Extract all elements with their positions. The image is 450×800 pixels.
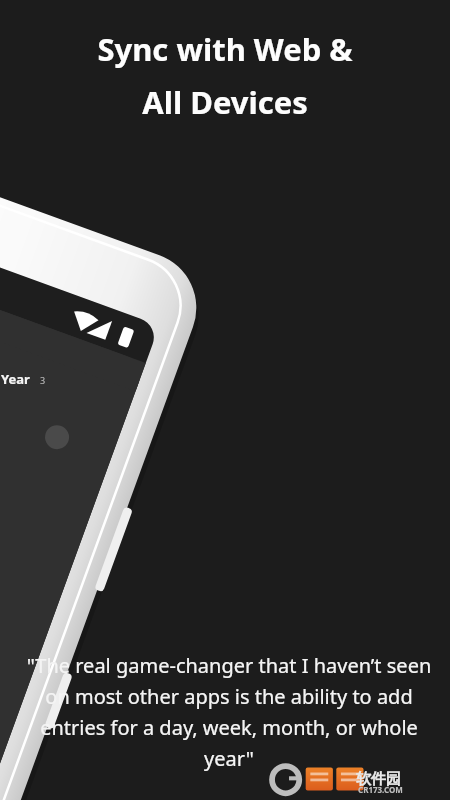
staticText: 3: [40, 374, 46, 386]
staticText: 软件园: [356, 770, 401, 789]
button[interactable]: CR173 site watermark: [270, 762, 446, 796]
staticText: Sync with Web &: [97, 28, 353, 70]
staticText: Year: [1, 370, 30, 388]
staticText: All Devices: [142, 81, 308, 123]
staticText: CR173.COM: [358, 784, 403, 795]
staticText: "The real game-changer that I haven’t se…: [20, 652, 438, 772]
